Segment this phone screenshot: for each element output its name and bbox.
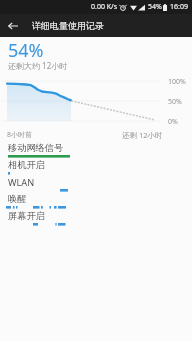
staticText: 还剩大约 12小时 bbox=[8, 60, 68, 71]
staticText: 唤醒 bbox=[8, 193, 27, 205]
staticText: 0% bbox=[168, 117, 178, 127]
staticText: 8小时前 bbox=[7, 130, 33, 140]
staticText: WLAN bbox=[8, 176, 35, 189]
staticText: 54% bbox=[8, 38, 44, 63]
button[interactable]: 移动网络信号 bbox=[0, 142, 192, 159]
button[interactable]: Back bbox=[0, 14, 26, 37]
staticText: 0.00 K/s bbox=[91, 2, 117, 12]
staticText: 还剩 12小时 bbox=[122, 130, 163, 140]
staticText: 54% bbox=[148, 2, 162, 12]
staticText: 16:09 bbox=[170, 2, 188, 12]
staticText: 50% bbox=[168, 97, 182, 107]
staticText: 屏幕开启 bbox=[8, 210, 45, 222]
button[interactable]: WLAN bbox=[0, 176, 192, 193]
staticText: 100% bbox=[168, 77, 186, 87]
button[interactable]: 唤醒 bbox=[0, 193, 192, 210]
staticText: 移动网络信号 bbox=[8, 142, 64, 154]
button[interactable]: 屏幕开启 bbox=[0, 210, 192, 227]
staticText: 相机开启 bbox=[8, 159, 45, 171]
button[interactable]: 相机开启 bbox=[0, 159, 192, 176]
staticText: 详细电量使用记录 bbox=[32, 20, 104, 31]
